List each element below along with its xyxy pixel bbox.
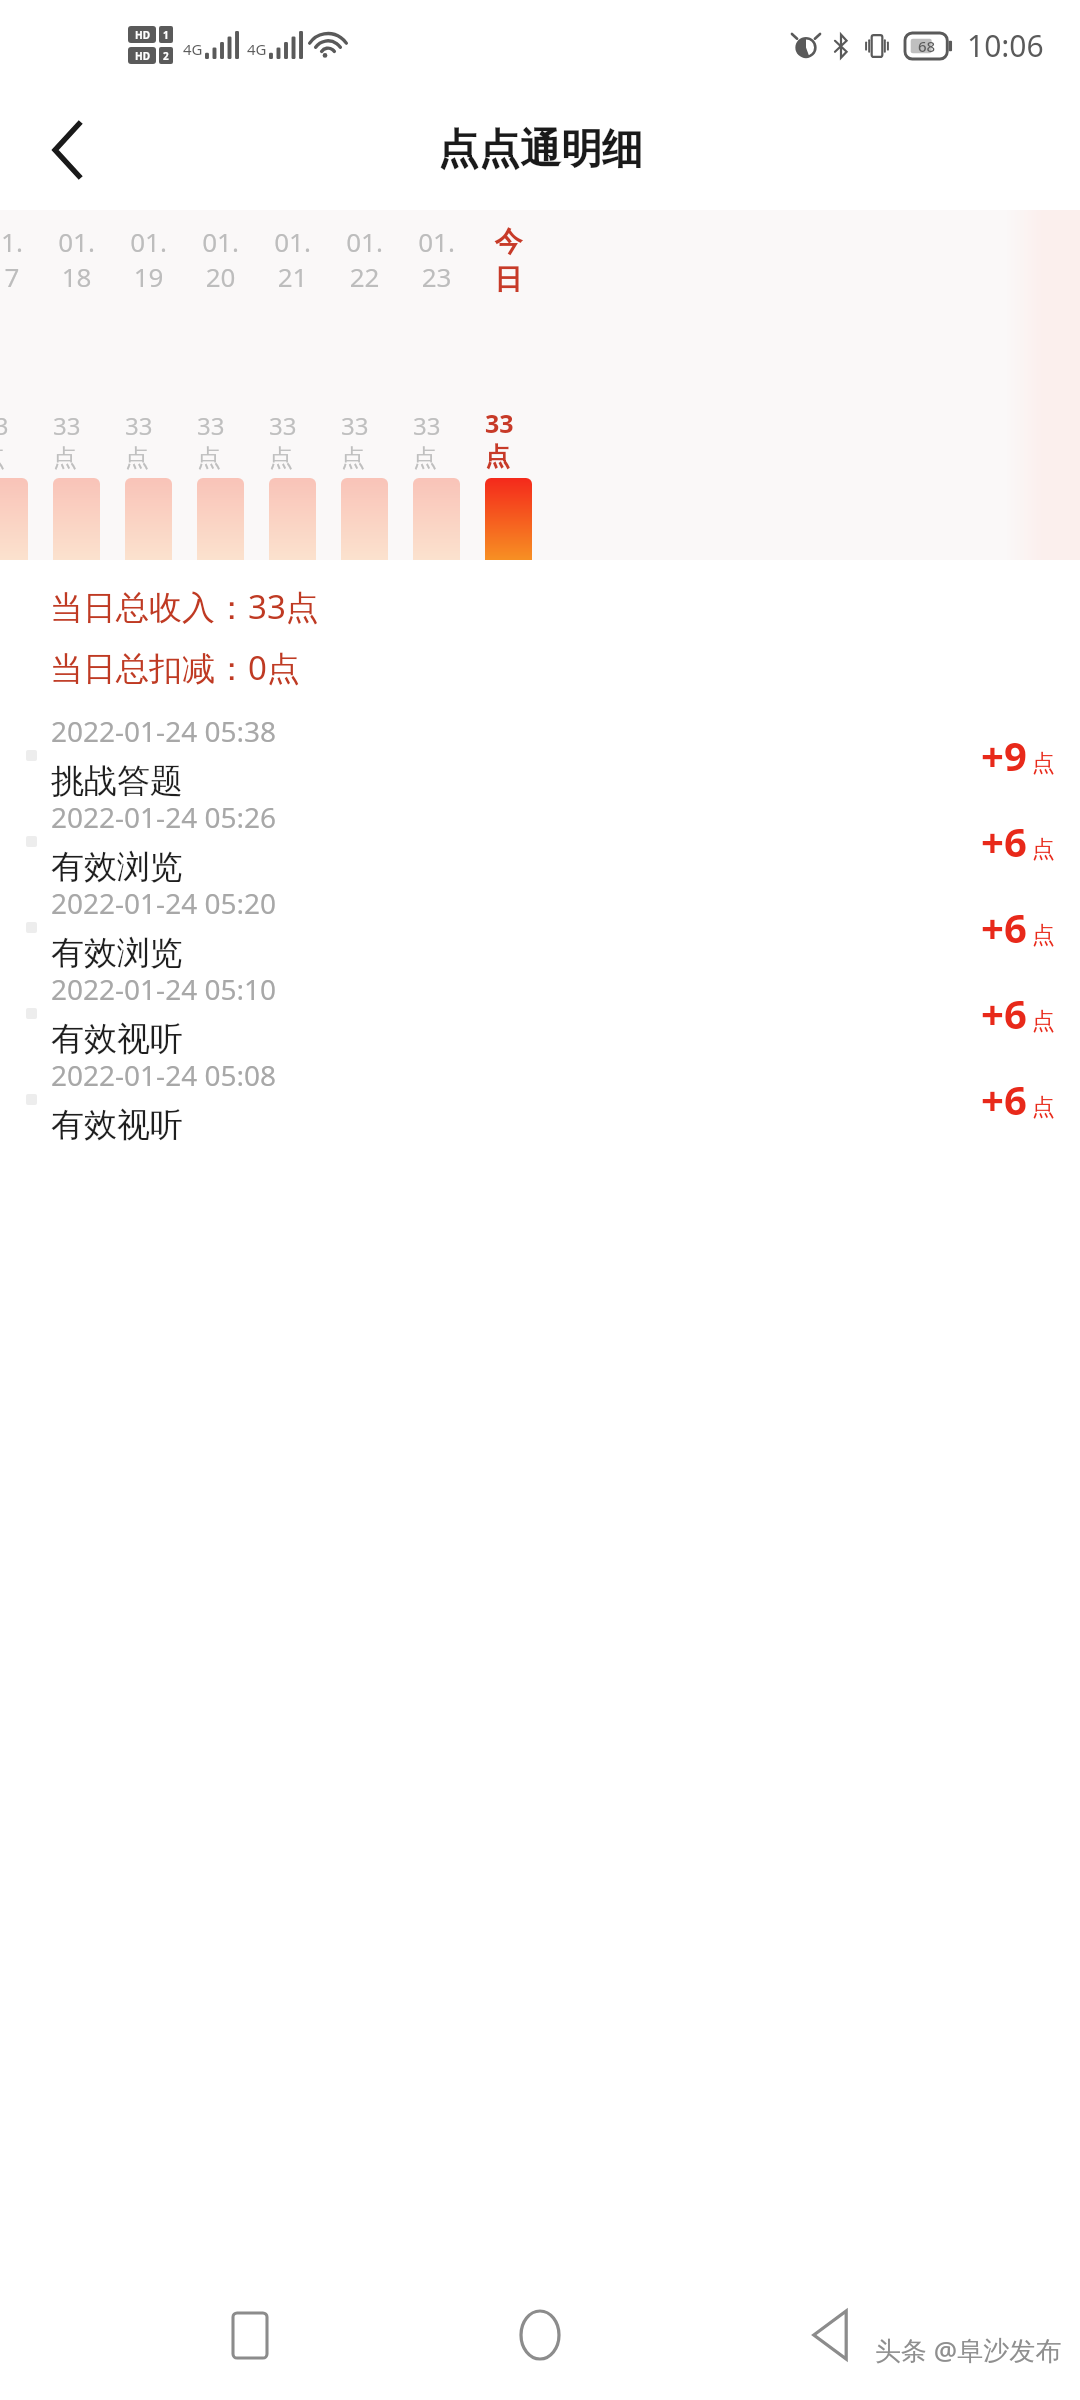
staticText: 点 (1032, 749, 1055, 778)
staticText: 01.18 (53, 224, 100, 294)
staticText: 01.23 (413, 224, 460, 294)
staticText: 33点 (269, 409, 316, 473)
button[interactable]: 01.22 (341, 210, 388, 560)
staticText: 4G (183, 39, 203, 59)
staticText: 01.19 (125, 224, 172, 294)
button[interactable]: 01.20 (197, 210, 244, 560)
staticText: 33点 (125, 409, 172, 473)
staticText: +6 (981, 986, 1027, 1040)
staticText: 今日 (485, 224, 532, 298)
staticText: 有效浏览 (51, 846, 183, 884)
button[interactable]: 2022-01-24 05:26 (0, 798, 1080, 884)
staticText: +6 (981, 900, 1027, 954)
staticText: 33点 (197, 409, 244, 473)
staticText: 01.20 (197, 224, 244, 294)
button[interactable]: 01.17 (0, 210, 28, 560)
staticText: 2022-01-24 05:26 (51, 798, 277, 836)
button[interactable]: 01.23 (413, 210, 460, 560)
button[interactable]: 2022-01-24 05:08 (0, 1056, 1080, 1142)
staticText: 33点 (485, 406, 532, 473)
staticText: 33点 (413, 409, 460, 473)
staticText: 当日总收入：33点 (50, 584, 319, 629)
staticText: 4G (247, 39, 267, 59)
staticText: 1 (163, 28, 169, 42)
staticText: 2022-01-24 05:38 (51, 712, 277, 750)
staticText: 头条 @阜沙发布 (875, 2332, 1062, 2368)
staticText: 33点 (341, 409, 388, 473)
staticText: +9 (981, 728, 1027, 782)
button[interactable]: 01.21 (269, 210, 316, 560)
staticText: +6 (981, 1072, 1027, 1126)
staticText: 2 (163, 49, 169, 63)
staticText: 当日总扣减：0点 (50, 645, 300, 690)
button[interactable]: 2022-01-24 05:38 (0, 712, 1080, 798)
staticText: 有效视听 (51, 1018, 183, 1056)
staticText: 点 (1032, 835, 1055, 864)
staticText: 2022-01-24 05:10 (51, 970, 277, 1008)
staticText: 挑战答题 (51, 760, 183, 798)
button[interactable]: Home (500, 2295, 580, 2375)
button[interactable]: 01.19 (125, 210, 172, 560)
staticText: 2022-01-24 05:08 (51, 1056, 277, 1094)
button[interactable]: 01.18 (53, 210, 100, 560)
staticText: 有效视听 (51, 1104, 183, 1142)
staticText: 68 (918, 36, 936, 56)
staticText: 10:06 (967, 25, 1044, 66)
staticText: 01.22 (341, 224, 388, 294)
staticText: 点 (1032, 1007, 1055, 1036)
staticText: 点 (1032, 921, 1055, 950)
button[interactable]: Back (790, 2295, 870, 2375)
button[interactable]: 今日 (485, 210, 532, 560)
staticText: 点点通明细 (438, 124, 643, 176)
staticText: 2022-01-24 05:20 (51, 884, 277, 922)
button[interactable]: Back (30, 112, 106, 188)
staticText: 有效浏览 (51, 932, 183, 970)
staticText: 点 (1032, 1093, 1055, 1122)
button[interactable]: 2022-01-24 05:20 (0, 884, 1080, 970)
staticText: HD (135, 28, 150, 42)
button[interactable]: Recents (210, 2295, 290, 2375)
staticText: 01.17 (0, 224, 28, 294)
staticText: 33点 (0, 409, 28, 473)
staticText: 01.21 (269, 224, 316, 294)
staticText: HD (135, 49, 150, 63)
staticText: +6 (981, 814, 1027, 868)
staticText: 33点 (53, 409, 100, 473)
button[interactable]: 2022-01-24 05:10 (0, 970, 1080, 1056)
